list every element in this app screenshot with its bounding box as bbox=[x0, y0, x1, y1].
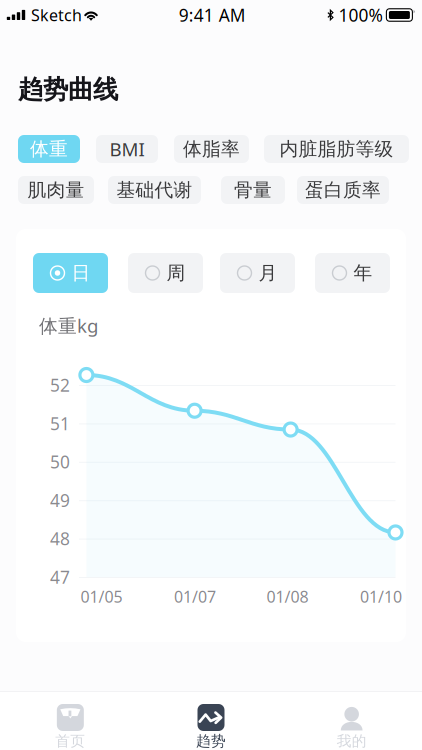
button[interactable]: 年 bbox=[315, 253, 390, 293]
button[interactable]: 周 bbox=[128, 253, 203, 293]
button[interactable]: BMI bbox=[96, 135, 158, 163]
staticText: 趋势 bbox=[196, 732, 226, 750]
button[interactable]: 内脏脂肪等级 bbox=[264, 135, 409, 163]
button[interactable]: 骨量 bbox=[221, 176, 285, 204]
staticText: 51 bbox=[50, 412, 70, 435]
staticText: 年 bbox=[353, 261, 372, 284]
button[interactable]: 体重 bbox=[18, 135, 80, 163]
button[interactable]: 蛋白质率 bbox=[297, 176, 389, 204]
staticText: 01/07 bbox=[174, 586, 216, 607]
staticText: 体脂率 bbox=[183, 137, 240, 160]
staticText: 肌肉量 bbox=[27, 178, 84, 201]
staticText: 基础代谢 bbox=[116, 178, 192, 201]
staticText: 52 bbox=[50, 373, 70, 396]
staticText: 50 bbox=[50, 450, 70, 473]
button[interactable]: 趋势 bbox=[141, 691, 281, 750]
button[interactable]: 基础代谢 bbox=[108, 176, 201, 204]
button[interactable]: 我的 bbox=[281, 691, 422, 750]
button[interactable]: 月 bbox=[220, 253, 295, 293]
button[interactable]: 日 bbox=[33, 253, 108, 293]
staticText: 日 bbox=[71, 261, 90, 284]
staticText: 49 bbox=[50, 489, 70, 512]
staticText: BMI bbox=[109, 137, 144, 161]
staticText: 月 bbox=[258, 261, 277, 284]
staticText: 48 bbox=[50, 527, 70, 550]
staticText: 01/08 bbox=[266, 586, 308, 607]
staticText: 内脏脂肪等级 bbox=[279, 137, 393, 160]
staticText: 趋势曲线 bbox=[18, 74, 118, 105]
staticText: 周 bbox=[166, 261, 185, 284]
staticText: 01/05 bbox=[80, 586, 122, 607]
button[interactable]: 首页 bbox=[0, 691, 141, 750]
button[interactable]: 肌肉量 bbox=[18, 176, 94, 204]
staticText: 47 bbox=[50, 565, 70, 588]
staticText: 蛋白质率 bbox=[305, 178, 381, 201]
staticText: Sketch bbox=[31, 4, 82, 26]
staticText: 骨量 bbox=[234, 178, 272, 201]
button[interactable]: 体脂率 bbox=[174, 135, 249, 163]
staticText: 体重kg bbox=[39, 313, 98, 338]
staticText: 我的 bbox=[337, 732, 367, 750]
staticText: 01/10 bbox=[360, 586, 402, 607]
staticText: 体重 bbox=[30, 137, 68, 160]
staticText: 100% bbox=[338, 3, 382, 26]
staticText: 9:41 AM bbox=[179, 3, 246, 26]
staticText: 首页 bbox=[55, 732, 85, 750]
